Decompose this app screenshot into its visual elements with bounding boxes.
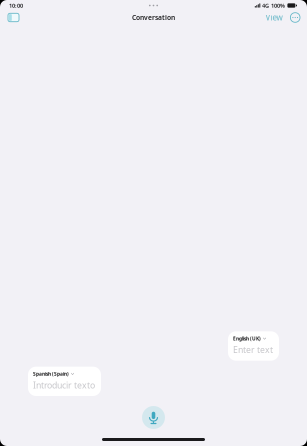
- staticText: Enter text: [233, 344, 273, 356]
- staticText: 10:00: [9, 2, 23, 9]
- staticText: Spanish (Spain): [33, 371, 69, 377]
- staticText: English (UK): [233, 335, 261, 342]
- button[interactable]: Start recording: [142, 406, 165, 429]
- button[interactable]: Toggle sidebar: [0, 8, 27, 27]
- staticText: View: [265, 12, 282, 23]
- button[interactable]: View: [262, 7, 285, 28]
- staticText: Introducir texto: [33, 379, 95, 391]
- staticText: 4G: [262, 2, 269, 9]
- staticText: 100%: [271, 2, 285, 9]
- button[interactable]: More options: [286, 8, 304, 27]
- staticText: Conversation: [132, 13, 175, 22]
